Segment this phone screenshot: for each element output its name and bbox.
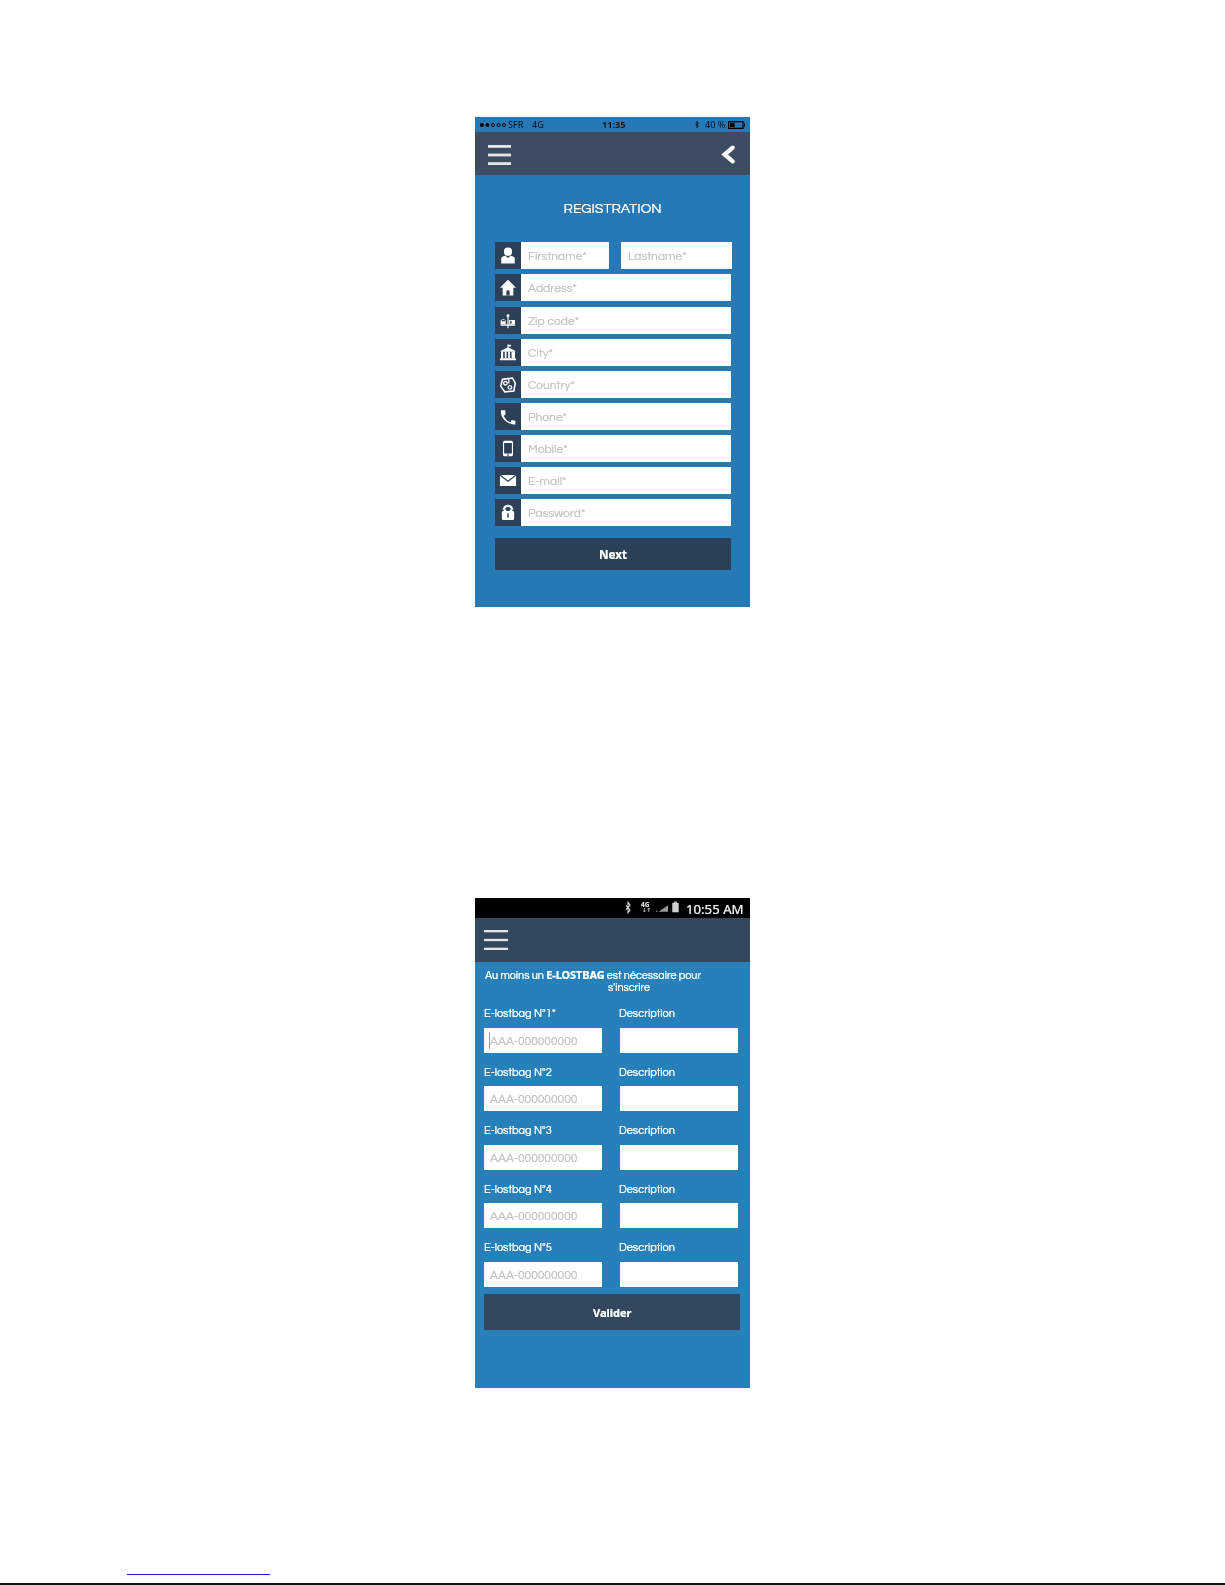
button[interactable]: Mobile* bbox=[495, 435, 731, 462]
button[interactable]: Country* bbox=[495, 371, 731, 398]
button[interactable]: AAA-000000000 bbox=[484, 1145, 602, 1170]
staticText: 40 % bbox=[705, 118, 726, 130]
staticText: Password* bbox=[528, 507, 586, 519]
staticText: E-lostbag N°4 bbox=[484, 1184, 552, 1195]
button[interactable]: AAA-000000000 bbox=[484, 1262, 602, 1287]
button[interactable]: AAA-000000000 bbox=[484, 1086, 602, 1111]
staticText: E-lostbag N°3 bbox=[484, 1125, 552, 1136]
staticText: Valider bbox=[593, 1305, 632, 1320]
button[interactable]: Address* bbox=[495, 274, 731, 301]
staticText: Next bbox=[599, 546, 628, 562]
staticText: Au moins un E-LOSTBAG est nécessaire pou… bbox=[485, 967, 702, 982]
staticText: AAA-000000000 bbox=[490, 1269, 578, 1281]
staticText: Phone* bbox=[528, 411, 568, 423]
staticText: 11:35 bbox=[602, 118, 626, 130]
staticText: Zip code* bbox=[528, 315, 580, 327]
button[interactable]: Valider bbox=[484, 1294, 740, 1330]
button[interactable]: City* bbox=[495, 339, 731, 366]
button[interactable]: Password* bbox=[495, 499, 731, 526]
staticText: 4G bbox=[532, 118, 544, 130]
staticText: AAA-000000000 bbox=[490, 1093, 578, 1105]
staticText: AAA-000000000 bbox=[490, 1210, 578, 1222]
staticText: Country* bbox=[528, 379, 575, 391]
button[interactable]: Back bbox=[722, 145, 735, 164]
button[interactable]: Menu bbox=[484, 930, 508, 950]
button[interactable]: Phone* bbox=[495, 403, 731, 430]
staticText: Description bbox=[619, 1242, 676, 1253]
staticText: Description bbox=[619, 1184, 676, 1195]
staticText: SFR bbox=[508, 118, 524, 130]
staticText: E-lostbag N°5 bbox=[484, 1242, 552, 1253]
button[interactable]: Menu bbox=[488, 145, 511, 165]
staticText: AAA-000000000 bbox=[490, 1152, 578, 1164]
staticText: City* bbox=[528, 347, 554, 359]
staticText: Description bbox=[619, 1067, 676, 1078]
button[interactable]: Next bbox=[495, 538, 731, 570]
button[interactable]: E-mail* bbox=[495, 467, 731, 494]
staticText: E-lostbag N°2 bbox=[484, 1067, 552, 1078]
staticText: Description bbox=[619, 1008, 676, 1019]
button[interactable]: Zip code* bbox=[495, 307, 731, 334]
staticText: E-lostbag N°1* bbox=[484, 1008, 556, 1019]
staticText: Description bbox=[619, 1125, 676, 1136]
button[interactable]: Lastname* bbox=[621, 242, 732, 269]
staticText: ↓↑ bbox=[642, 907, 652, 913]
staticText: Firstname* bbox=[528, 250, 587, 262]
staticText: Address* bbox=[528, 282, 577, 294]
staticText: 10:55 AM bbox=[686, 900, 744, 918]
staticText: 4G bbox=[641, 900, 650, 909]
button[interactable]: Firstname* bbox=[495, 242, 609, 269]
staticText: Mobile* bbox=[528, 443, 568, 455]
staticText: E-mail* bbox=[528, 475, 567, 487]
staticText: s'inscrire bbox=[608, 982, 651, 993]
button[interactable]: AAA-000000000 bbox=[484, 1203, 602, 1228]
staticText: Lastname* bbox=[628, 250, 687, 262]
staticText: AAA-000000000 bbox=[490, 1035, 578, 1047]
staticText: REGISTRATION bbox=[475, 202, 750, 216]
button[interactable]: AAA-000000000 bbox=[484, 1028, 602, 1053]
